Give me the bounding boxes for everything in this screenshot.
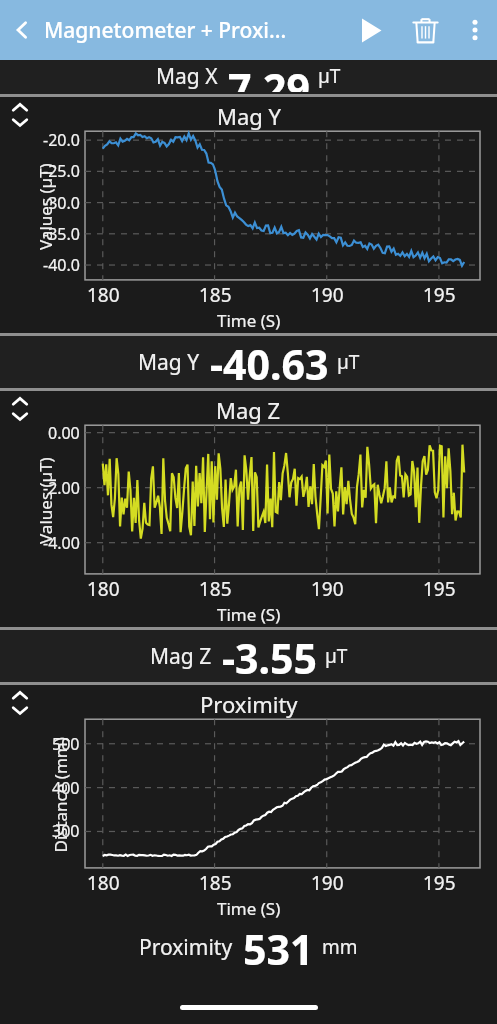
button[interactable]: Resize chart [7,688,33,722]
staticText: -35.0 [43,223,80,245]
button[interactable]: Proximity [0,921,497,973]
button[interactable]: Delete [397,0,453,60]
staticText: Time (S) [217,603,281,626]
staticText: 180 [87,282,120,308]
button[interactable]: Mag Y [0,336,497,388]
staticText: 0.00 [48,422,80,444]
button[interactable]: Back [0,0,44,60]
staticText: mm [322,934,358,960]
staticText: 185 [199,576,232,602]
staticText: Mag X [156,62,218,91]
staticText: 195 [423,576,456,602]
staticText: Distance (mm) [48,736,71,852]
staticText: 7.29 [228,60,310,92]
staticText: µT [318,63,341,89]
staticText: Time (S) [217,897,281,920]
staticText: 500 [52,733,80,755]
staticText: -25.0 [43,160,80,182]
staticText: 185 [199,870,232,896]
staticText: 185 [199,282,232,308]
staticText: -4.00 [43,532,80,554]
staticText: Magnetometer + Proxi... [44,16,343,45]
staticText: 180 [87,870,120,896]
staticText: 180 [87,576,120,602]
staticText: -2.00 [43,477,80,499]
staticText: Mag Z [216,395,281,425]
button[interactable]: Resize chart [7,394,33,428]
staticText: 190 [311,870,344,896]
staticText: Values (µT) [34,457,57,544]
staticText: 190 [311,282,344,308]
staticText: 300 [52,820,80,842]
staticText: Mag Z [150,642,212,671]
staticText: 195 [423,870,456,896]
staticText: 190 [311,576,344,602]
staticText: Proximity [139,933,233,962]
staticText: 531 [243,921,314,973]
staticText: 400 [52,777,80,799]
staticText: Mag Y [138,348,200,377]
staticText: Mag Y [217,101,281,131]
button[interactable]: Mag Z [0,630,497,682]
staticText: µT [337,349,360,375]
staticText: -40.0 [43,254,80,276]
staticText: µT [325,643,348,669]
staticText: Time (S) [217,309,281,332]
staticText: -30.0 [43,192,80,214]
button[interactable]: Play [343,0,397,60]
staticText: Values (µT) [34,163,57,250]
staticText: Proximity [200,689,298,719]
staticText: 195 [423,282,456,308]
staticText: -3.55 [222,630,317,682]
button[interactable]: Resize chart [7,100,33,134]
staticText: -20.0 [43,129,80,151]
button[interactable]: More options [453,0,497,60]
staticText: -40.63 [210,336,329,388]
